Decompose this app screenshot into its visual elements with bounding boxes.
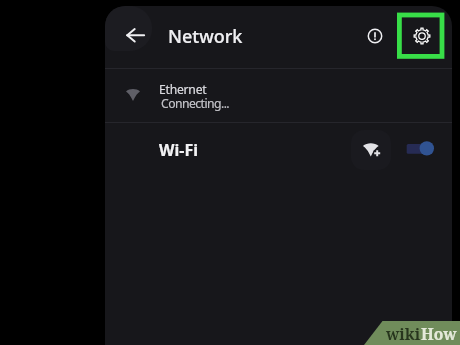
button[interactable]: Add network [351, 130, 391, 170]
staticText: How [421, 323, 457, 344]
button[interactable]: Info [355, 16, 395, 56]
button[interactable]: Wi-Fi [105, 123, 452, 177]
staticText: wiki [386, 323, 421, 344]
staticText: Wi-Fi [159, 139, 198, 161]
staticText: Connecting... [161, 95, 230, 112]
staticText: Ethernet [159, 81, 207, 98]
button[interactable]: Ethernet [105, 70, 452, 122]
button[interactable]: Settings [400, 14, 444, 58]
button[interactable]: Wi-Fi toggle [405, 136, 439, 161]
staticText: Network [168, 24, 243, 49]
button[interactable]: Back [105, 6, 152, 51]
